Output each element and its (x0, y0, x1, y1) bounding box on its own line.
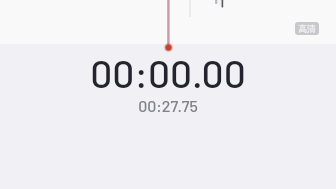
button[interactable]: HD quality (295, 22, 319, 35)
button[interactable]: 00:00.00 (0, 49, 336, 96)
staticText: 00:00.00 (90, 49, 246, 96)
staticText: 00:27.75 (138, 96, 198, 115)
staticText: 高清 (298, 23, 316, 34)
